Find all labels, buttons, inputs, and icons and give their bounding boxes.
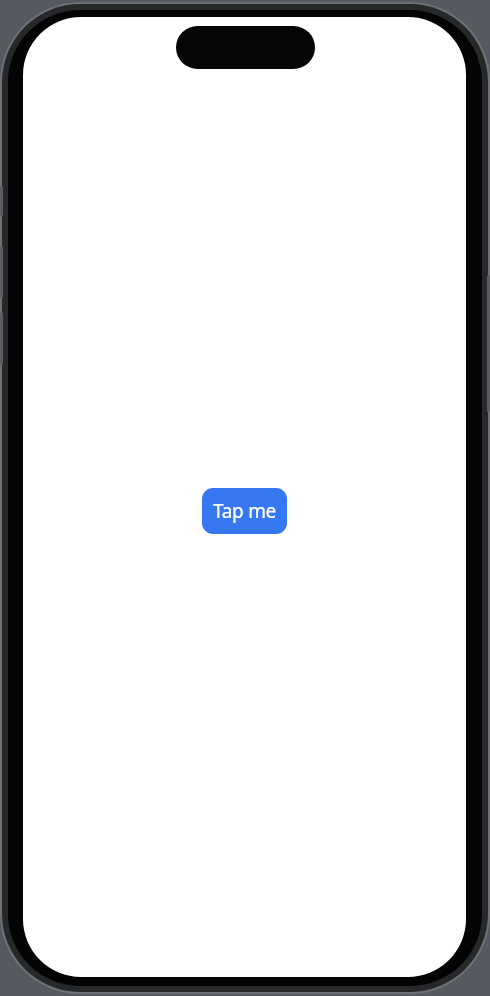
staticText: Tap me (213, 498, 277, 524)
button[interactable]: Tap me (202, 488, 287, 534)
